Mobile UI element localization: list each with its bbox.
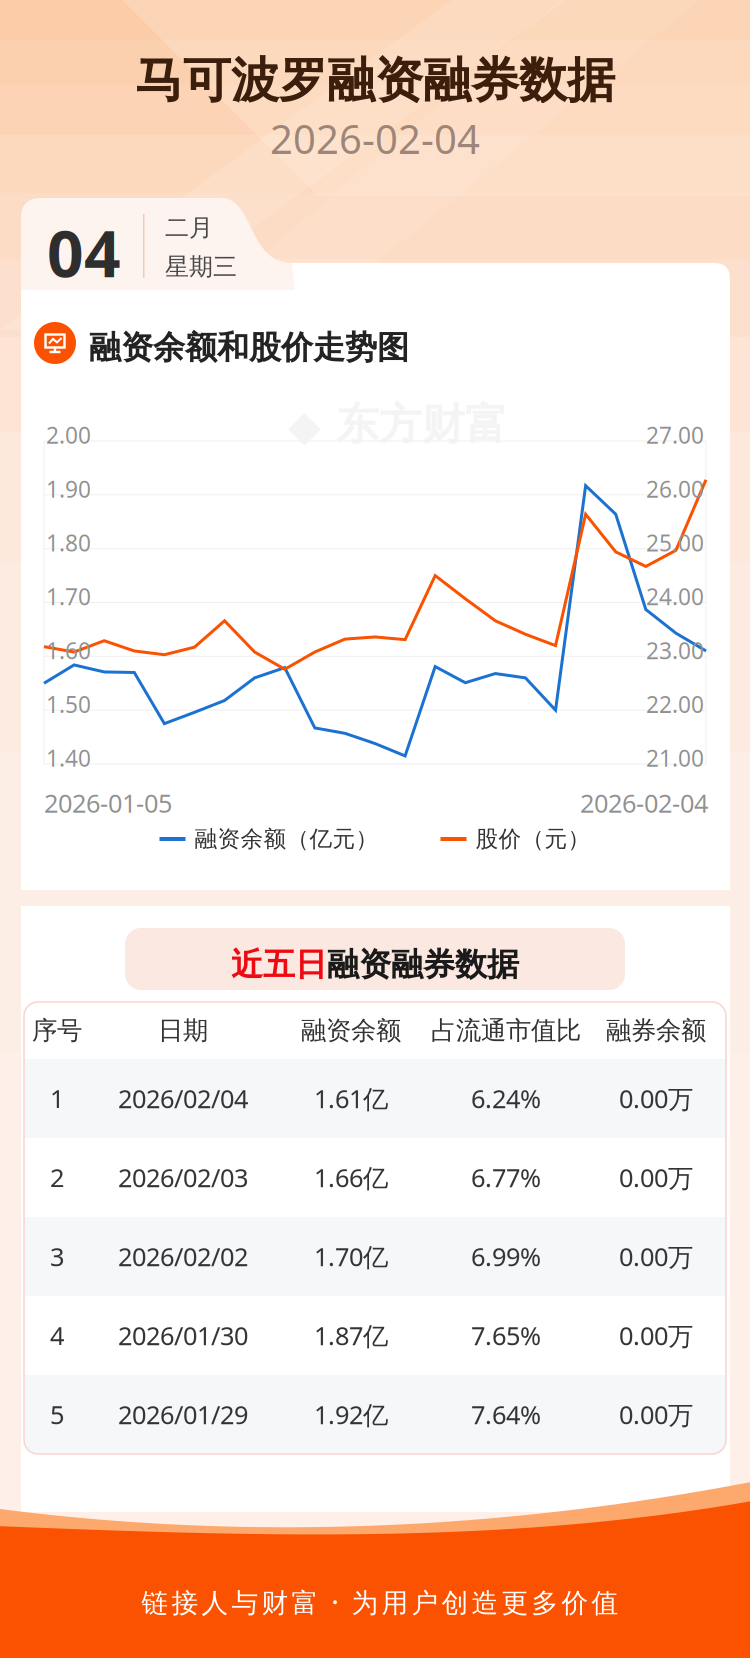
staticText: 5 [50, 1398, 64, 1431]
staticText: 链接人与财富 · 为用户创造更多价值 [141, 1584, 618, 1620]
staticText: 2026/02/04 [118, 1082, 248, 1115]
staticText: 1.50 [46, 689, 91, 719]
staticText: 2026-02-04 [580, 786, 708, 820]
staticText: 1.92亿 [314, 1398, 388, 1431]
staticText: ◆ 东方财富 [288, 398, 508, 450]
staticText: 2.00 [46, 420, 91, 450]
staticText: 7.64% [471, 1398, 541, 1431]
staticText: 6.77% [471, 1161, 541, 1194]
staticText: 融券余额 [606, 1015, 706, 1046]
staticText: 04 [47, 210, 121, 295]
staticText: 融资融券数据 [327, 945, 519, 984]
staticText: 2026-02-04 [270, 112, 480, 165]
staticText: 4 [50, 1319, 64, 1352]
staticText: 0.00万 [619, 1240, 693, 1273]
staticText: 0.00万 [619, 1161, 693, 1194]
staticText: 6.24% [471, 1082, 541, 1115]
staticText: 序号 [32, 1015, 82, 1046]
staticText: 近五日 [231, 945, 327, 984]
staticText: 2026/01/29 [118, 1398, 248, 1431]
staticText: 3 [50, 1240, 64, 1273]
staticText: 星期三 [165, 252, 237, 281]
staticText: 21.00 [646, 743, 704, 773]
staticText: 1.61亿 [314, 1082, 388, 1115]
staticText: 23.00 [646, 635, 704, 665]
staticText: 27.00 [646, 420, 704, 450]
staticText: 1.66亿 [314, 1161, 388, 1194]
staticText: 0.00万 [619, 1082, 693, 1115]
staticText: 融资余额（亿元） [194, 825, 378, 853]
staticText: 2026-01-05 [44, 786, 172, 820]
staticText: 0.00万 [619, 1319, 693, 1352]
staticText: 22.00 [646, 689, 704, 719]
staticText: 1.80 [46, 528, 91, 558]
staticText: 融资余额和股价走势图 [89, 328, 409, 367]
staticText: 马可波罗融资融券数据 [135, 51, 615, 110]
staticText: 占流通市值比 [431, 1015, 581, 1046]
staticText: 1.60 [46, 635, 91, 665]
staticText: 二月 [165, 213, 213, 242]
staticText: 股价（元） [475, 825, 590, 853]
staticText: 25.00 [646, 528, 704, 558]
staticText: 1.70亿 [314, 1240, 388, 1273]
staticText: 6.99% [471, 1240, 541, 1273]
staticText: 24.00 [646, 581, 704, 612]
staticText: 日期 [158, 1015, 208, 1046]
staticText: 2026/02/02 [118, 1240, 248, 1273]
staticText: 1.90 [46, 474, 91, 504]
staticText: 融资余额 [301, 1015, 401, 1046]
staticText: 1.70 [46, 581, 91, 612]
staticText: 0.00万 [619, 1398, 693, 1431]
staticText: 1 [50, 1082, 64, 1115]
staticText: 7.65% [471, 1319, 541, 1352]
staticText: 2026/01/30 [118, 1319, 248, 1352]
staticText: 2 [50, 1161, 64, 1194]
staticText: 2026/02/03 [118, 1161, 248, 1194]
staticText: 1.40 [46, 743, 91, 773]
staticText: 26.00 [646, 474, 704, 504]
staticText: 1.87亿 [314, 1319, 388, 1352]
